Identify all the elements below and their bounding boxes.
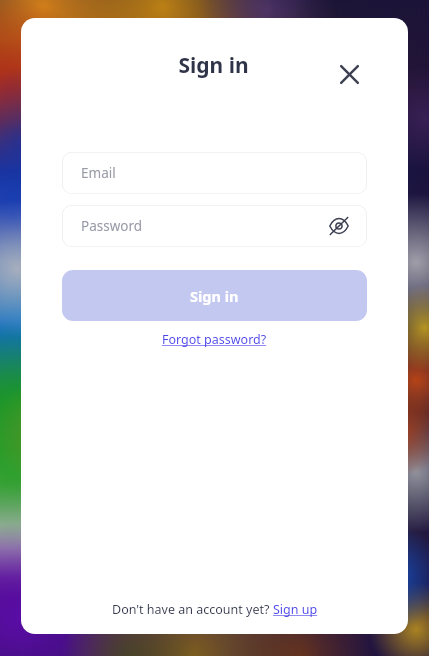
button[interactable]: Sign up: [273, 601, 318, 618]
button[interactable]: Password: [62, 205, 367, 247]
button[interactable]: Close: [330, 55, 368, 93]
button[interactable]: Show password: [328, 215, 350, 237]
staticText: Don't have an account yet?: [112, 601, 273, 618]
button[interactable]: Forgot password?: [158, 328, 271, 351]
staticText: Email: [81, 164, 116, 182]
staticText: Forgot password?: [162, 331, 267, 348]
button[interactable]: Sign in: [62, 270, 367, 321]
staticText: Sign up: [273, 601, 318, 618]
button[interactable]: Email: [62, 152, 367, 194]
staticText: Sign in: [190, 286, 239, 306]
staticText: Sign in: [178, 51, 249, 80]
staticText: Password: [81, 217, 143, 235]
